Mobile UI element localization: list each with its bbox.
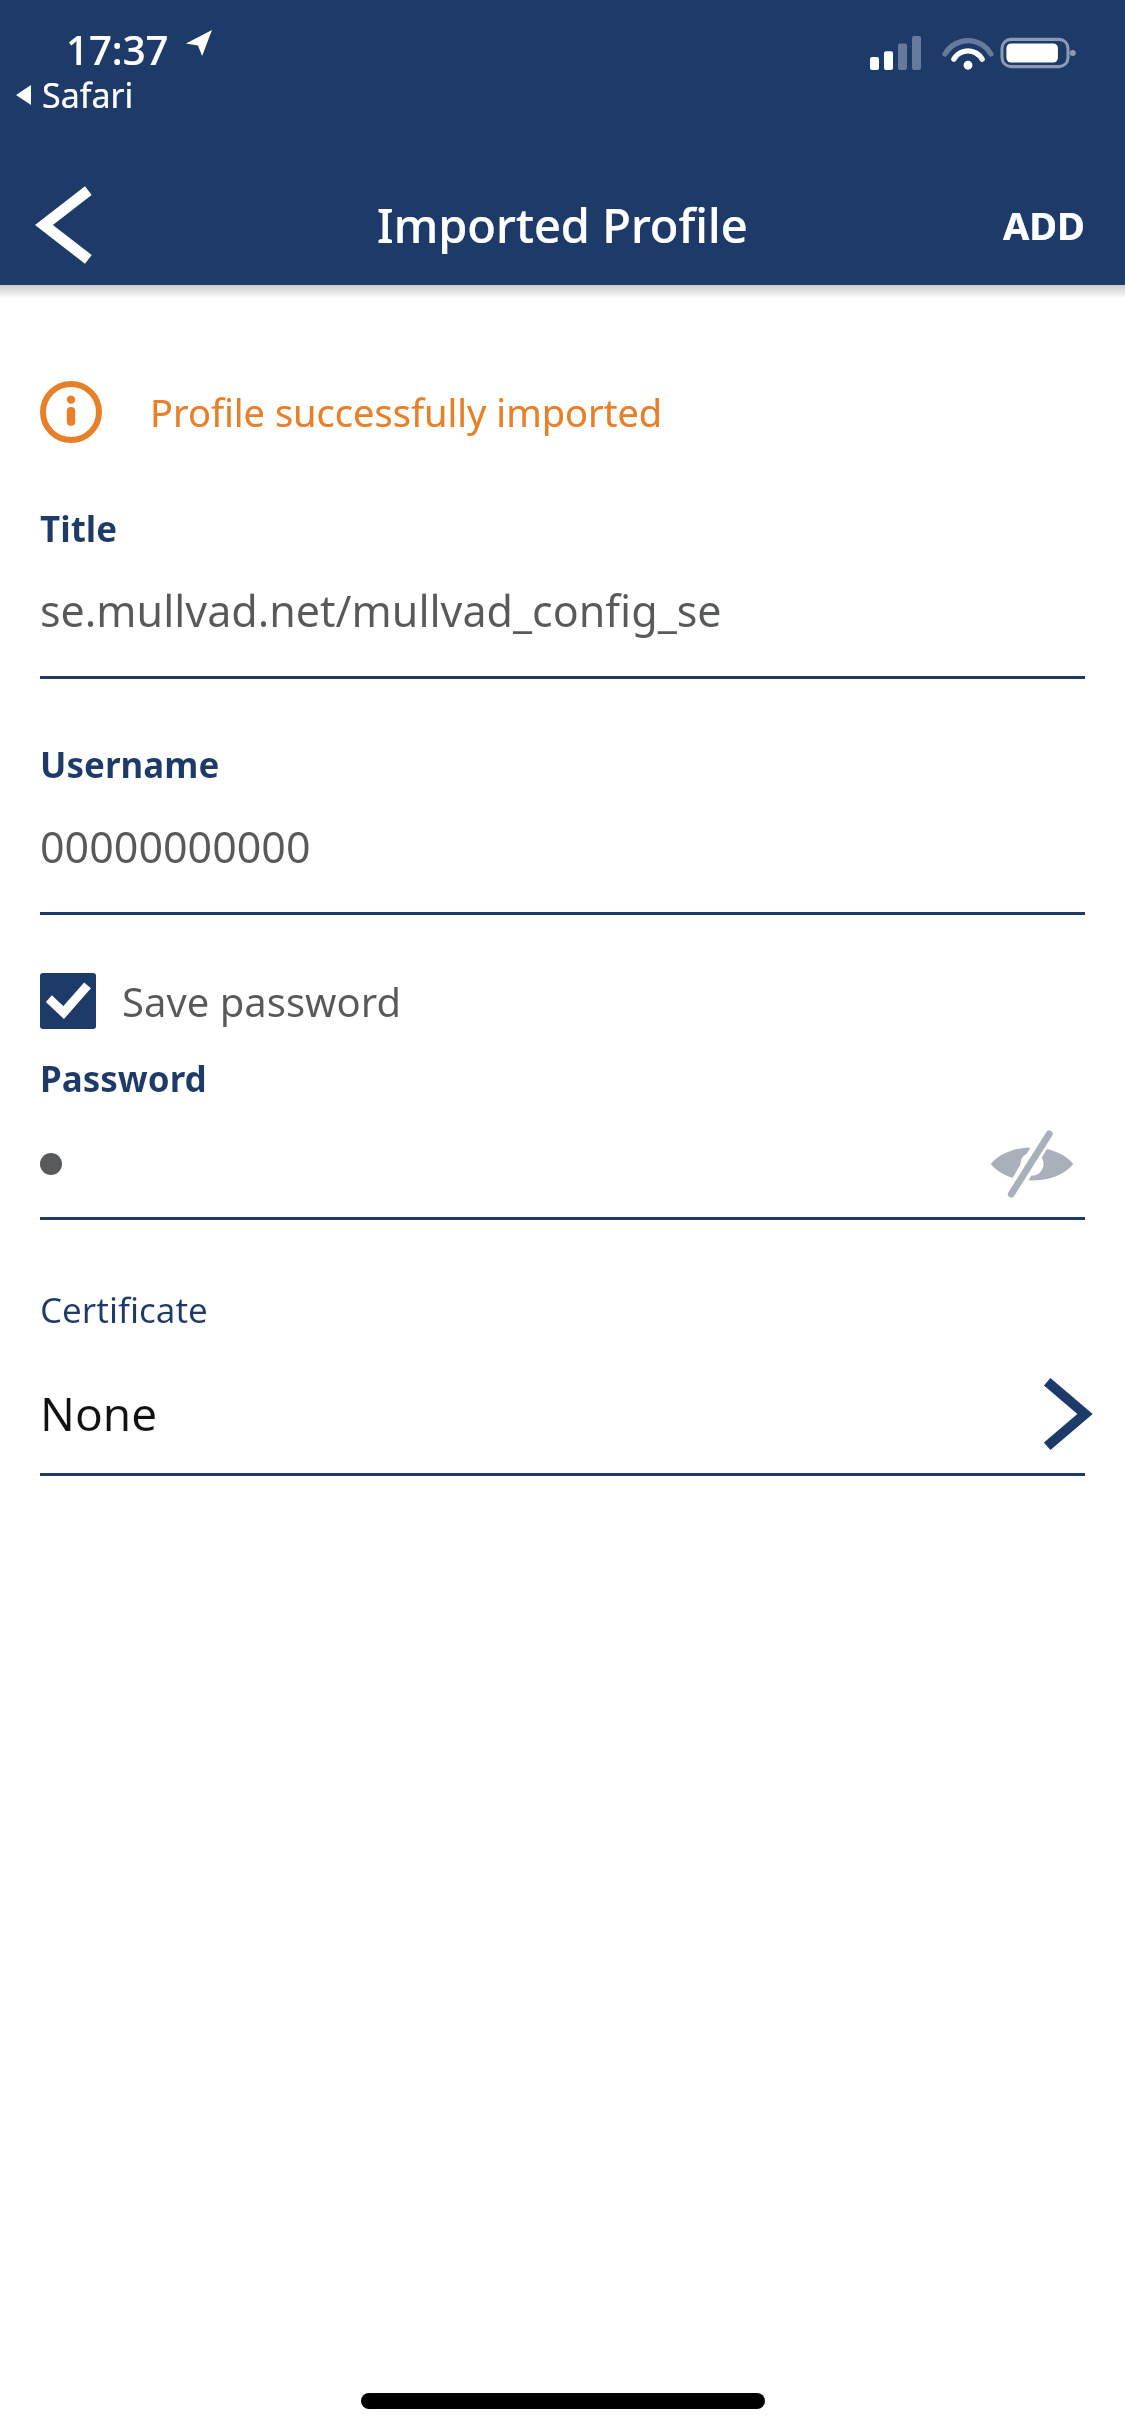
button[interactable]: Back: [14, 175, 114, 275]
staticText: Username: [40, 741, 220, 789]
button[interactable]: Save password: [40, 973, 401, 1029]
staticText: Safari: [42, 72, 134, 118]
staticText: Certificate: [40, 1286, 208, 1334]
staticText: Profile successfully imported: [150, 386, 663, 438]
staticText: 00000000000: [40, 817, 311, 876]
button[interactable]: None: [40, 1382, 1085, 1445]
button[interactable]: ADD: [983, 181, 1105, 269]
staticText: Imported Profile: [377, 193, 748, 257]
staticText: Title: [40, 505, 118, 553]
staticText: Save password: [122, 974, 401, 1028]
staticText: Password: [40, 1055, 207, 1103]
staticText: ADD: [1003, 199, 1085, 251]
staticText: 17:37: [66, 22, 169, 76]
button[interactable]: Show password: [979, 1129, 1085, 1199]
staticText: se.mullvad.net/mullvad_config_se: [40, 581, 722, 640]
staticText: None: [40, 1382, 158, 1445]
